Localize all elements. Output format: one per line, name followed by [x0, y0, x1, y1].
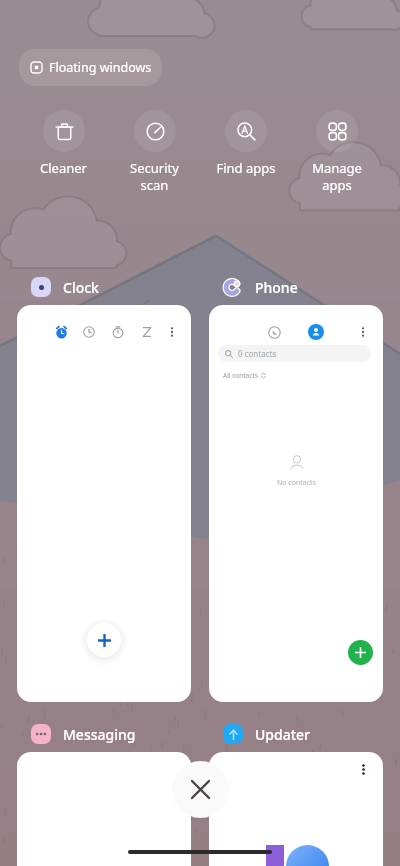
button[interactable]: Find apps	[200, 110, 291, 177]
button[interactable]: Clock	[17, 277, 99, 297]
button[interactable]: Add contact	[348, 640, 373, 665]
button[interactable]: Contacts	[308, 324, 324, 340]
button[interactable]: Recents	[262, 320, 286, 344]
staticText: All contacts	[223, 371, 258, 380]
button[interactable]: Alarm	[17, 305, 191, 702]
button[interactable]: Messaging	[17, 724, 136, 744]
staticText: Manage apps	[312, 159, 362, 194]
button[interactable]: Timer	[135, 320, 159, 344]
button[interactable]: Alarm	[49, 320, 73, 344]
button[interactable]: Recents	[209, 305, 383, 702]
button[interactable]: Clock	[77, 320, 101, 344]
staticText: Security scan	[130, 159, 179, 194]
button[interactable]: Close all	[172, 761, 229, 818]
staticText: Phone	[255, 278, 298, 297]
button[interactable]: Stopwatch	[106, 320, 130, 344]
staticText: Find apps	[216, 159, 276, 177]
button[interactable]: More options	[358, 764, 369, 775]
staticText: 0 contacts	[238, 348, 277, 359]
button[interactable]: 0 contacts	[218, 345, 371, 362]
button[interactable]: Updater	[209, 724, 311, 744]
button[interactable]: Manage apps	[291, 110, 382, 194]
staticText: Floating windows	[49, 59, 152, 76]
staticText: Clock	[63, 278, 99, 297]
button[interactable]: More options	[160, 320, 184, 344]
button[interactable]: More options	[209, 752, 383, 866]
button[interactable]: All contacts	[223, 371, 266, 380]
button[interactable]: Cleaner	[18, 110, 109, 177]
staticText: Cleaner	[40, 159, 87, 177]
button[interactable]: Security scan	[109, 110, 200, 194]
staticText: No contacts	[277, 478, 316, 488]
button[interactable]: Phone	[209, 277, 298, 297]
staticText: Messaging	[63, 725, 136, 744]
button[interactable]: More options	[351, 320, 375, 344]
staticText: Updater	[255, 725, 311, 744]
button[interactable]: Add alarm	[87, 623, 121, 657]
button[interactable]: Floating windows	[19, 49, 162, 86]
button[interactable]	[17, 752, 191, 866]
